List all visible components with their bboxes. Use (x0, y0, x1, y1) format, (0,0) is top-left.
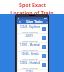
staticText: 12716 - Sachkhand Exp (19, 70, 41, 72)
button[interactable]: Track train (42, 45, 46, 49)
button[interactable]: 12716 - Sachkhand Exp (18, 70, 47, 72)
button[interactable]: Track train (42, 36, 46, 40)
button[interactable]: Track train (42, 27, 46, 31)
button[interactable]: 12002 - Shatabdi Exp (18, 61, 47, 69)
staticText: Spot Exact (19, 1, 46, 8)
staticText: Tap to track live running status (19, 58, 41, 60)
button[interactable]: Menu (18, 20, 21, 23)
button[interactable]: 12345 - Rajdhani Exp (18, 25, 47, 33)
staticText: 12626 - Kerala Express (19, 52, 41, 56)
button[interactable]: 12626 - Kerala Express (18, 52, 47, 60)
button[interactable]: 12951 - Mumbai Raj (18, 43, 47, 51)
staticText: Location of Train (10, 9, 54, 14)
staticText: 12951 - Mumbai Raj (19, 43, 41, 47)
staticText: Tap to track live running status (19, 31, 41, 33)
staticText: Tap to track live running status (19, 40, 41, 42)
button[interactable]: 22691 - Bangalore Raj (18, 34, 47, 42)
staticText: Live Train Status (22, 19, 47, 24)
button[interactable]: Track train (42, 63, 46, 67)
staticText: Tap to track live running status (19, 67, 41, 69)
staticText: Tap to track live running status (19, 49, 41, 51)
staticText: 12002 - Shatabdi Exp (19, 61, 41, 65)
button[interactable]: Track train (42, 54, 46, 58)
staticText: 12345 - Rajdhani Exp (19, 25, 41, 29)
staticText: 22691 - Bangalore Raj (19, 34, 41, 38)
